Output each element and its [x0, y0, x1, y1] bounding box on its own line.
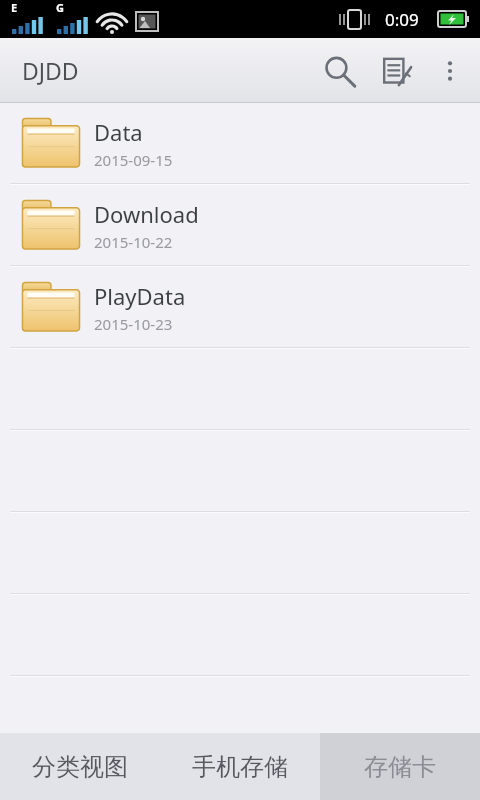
button[interactable]: More options: [426, 47, 474, 95]
staticText: Data: [94, 117, 143, 147]
staticText: 存储卡: [364, 752, 436, 782]
button[interactable]: 手机存储: [160, 733, 320, 800]
button[interactable]: Data: [0, 103, 480, 183]
staticText: 2015-10-22: [94, 232, 173, 252]
staticText: 2015-10-23: [94, 314, 173, 334]
staticText: 手机存储: [192, 752, 288, 782]
button[interactable]: 分类视图: [0, 733, 160, 800]
staticText: Download: [94, 199, 199, 229]
staticText: PlayData: [94, 281, 186, 311]
staticText: E: [11, 0, 18, 15]
staticText: DJDD: [22, 55, 79, 86]
button[interactable]: Search: [310, 42, 368, 100]
button[interactable]: PlayData: [0, 267, 480, 347]
button[interactable]: Edit: [368, 42, 426, 100]
staticText: 2015-09-15: [94, 150, 173, 170]
staticText: G: [56, 0, 64, 15]
staticText: 0:09: [385, 8, 419, 31]
staticText: 分类视图: [32, 752, 128, 782]
button[interactable]: 存储卡: [320, 733, 480, 800]
button[interactable]: Download: [0, 185, 480, 265]
